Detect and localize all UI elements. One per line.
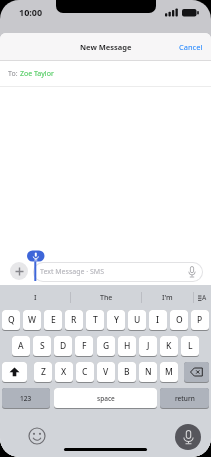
staticText: M — [165, 366, 173, 378]
staticText: H — [124, 340, 131, 352]
button[interactable]: U — [128, 310, 146, 330]
button[interactable]: A — [12, 336, 30, 356]
staticText: return — [175, 394, 195, 403]
staticText: U — [134, 314, 141, 326]
button[interactable]: E — [44, 310, 62, 330]
staticText: W — [28, 314, 36, 326]
button[interactable]: K — [160, 336, 178, 356]
staticText: J — [147, 340, 150, 352]
button[interactable]: Cancel — [179, 42, 203, 52]
button[interactable]: R — [65, 310, 83, 330]
staticText: D — [60, 340, 67, 352]
button[interactable]: S — [33, 336, 51, 356]
staticText: V — [103, 366, 109, 378]
button[interactable]: O — [170, 310, 188, 330]
button[interactable]: P — [191, 310, 209, 330]
button[interactable]: G — [97, 336, 115, 356]
staticText: L — [188, 340, 193, 352]
button[interactable]: A — [194, 285, 211, 310]
staticText: New Message — [80, 42, 132, 52]
staticText: space — [97, 394, 115, 403]
button[interactable]: X — [55, 362, 73, 382]
button[interactable]: To: — [0, 61, 211, 87]
staticText: K — [166, 340, 172, 352]
button[interactable]: F — [75, 336, 93, 356]
staticText: To: — [8, 69, 20, 79]
button[interactable]: I'm — [142, 285, 193, 310]
staticText: E — [51, 314, 56, 326]
button[interactable] — [28, 427, 46, 445]
staticText: Zoe Taylor — [20, 69, 54, 79]
staticText: B — [124, 366, 130, 378]
button[interactable]: Text Message · SMS — [34, 263, 202, 281]
button[interactable] — [2, 362, 27, 382]
button[interactable]: J — [139, 336, 157, 356]
button[interactable]: T — [86, 310, 104, 330]
staticText: I — [34, 293, 37, 303]
staticText: Q — [8, 314, 15, 326]
staticText: P — [197, 314, 203, 326]
button[interactable]: W — [23, 310, 41, 330]
staticText: A — [202, 293, 207, 302]
button[interactable]: N — [139, 362, 157, 382]
button[interactable]: Z — [34, 362, 52, 382]
staticText: C — [82, 366, 88, 378]
button[interactable] — [10, 262, 28, 280]
staticText: Z — [41, 366, 46, 378]
button[interactable]: I — [149, 310, 167, 330]
staticText: I'm — [162, 293, 173, 303]
staticText: X — [61, 366, 67, 378]
staticText: I — [156, 314, 160, 326]
staticText: R — [71, 314, 77, 326]
staticText: F — [82, 340, 87, 352]
button[interactable]: H — [118, 336, 136, 356]
staticText: 123 — [20, 394, 32, 403]
staticText: Y — [114, 314, 119, 326]
staticText: The — [100, 293, 113, 303]
button[interactable]: D — [54, 336, 72, 356]
staticText: N — [145, 366, 152, 378]
button[interactable]: 123 — [2, 388, 50, 408]
button[interactable]: space — [54, 388, 157, 408]
button[interactable]: Q — [2, 310, 20, 330]
button[interactable]: B — [118, 362, 136, 382]
button[interactable]: return — [160, 388, 209, 408]
button[interactable]: L — [181, 336, 199, 356]
staticText: S — [40, 340, 45, 352]
staticText: G — [103, 340, 110, 352]
staticText: O — [176, 314, 183, 326]
button[interactable] — [184, 362, 209, 382]
button[interactable]: The — [71, 285, 141, 310]
staticText: A — [18, 340, 24, 352]
button[interactable]: Y — [107, 310, 125, 330]
staticText: T — [93, 314, 98, 326]
staticText: Cancel — [179, 42, 203, 52]
staticText: Text Message · SMS — [40, 267, 104, 277]
button[interactable]: I — [0, 285, 70, 310]
button[interactable] — [175, 424, 201, 450]
staticText: 10:00 — [19, 6, 43, 18]
button[interactable]: V — [97, 362, 115, 382]
button[interactable]: C — [76, 362, 94, 382]
button[interactable]: M — [160, 362, 178, 382]
